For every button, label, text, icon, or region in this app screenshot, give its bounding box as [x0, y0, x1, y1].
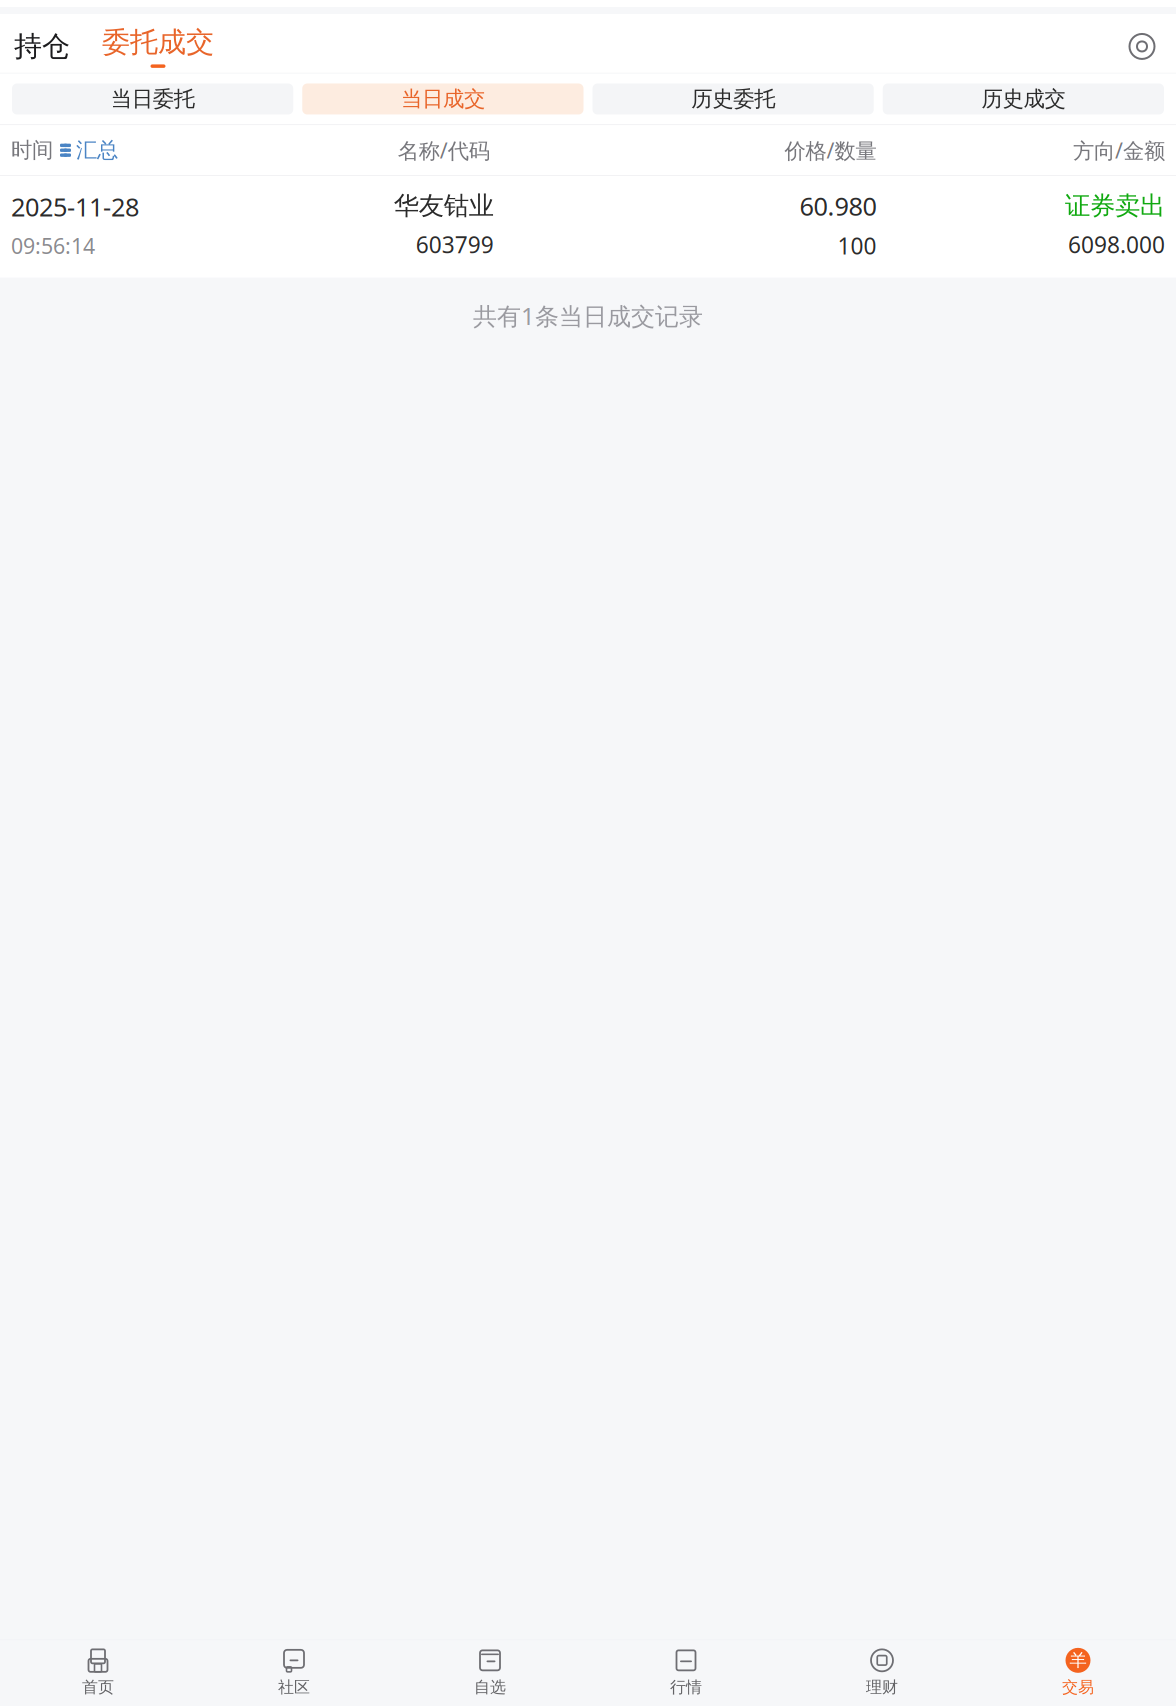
staticText: 社区 — [278, 1677, 310, 1697]
button[interactable]: 行情 — [588, 1640, 784, 1706]
button[interactable]: 当日成交 — [302, 83, 583, 114]
staticText: 名称/代码 — [398, 136, 490, 164]
staticText: 603799 — [416, 229, 494, 259]
button[interactable]: 委托成交 — [98, 25, 218, 68]
staticText: 60.980 — [799, 189, 876, 223]
staticText: 价格/数量 — [784, 136, 876, 164]
staticText: 自选 — [474, 1677, 506, 1697]
staticText: 方向/金额 — [1073, 136, 1165, 164]
staticText: 理财 — [866, 1677, 898, 1697]
button[interactable]: 首页 — [0, 1640, 196, 1706]
button[interactable]: 汇总 — [57, 137, 118, 163]
staticText: 共有1条当日成交记录 — [473, 300, 703, 332]
staticText: 汇总 — [76, 137, 118, 163]
staticText: 行情 — [670, 1677, 702, 1697]
staticText: 100 — [837, 231, 876, 261]
staticText: 当日成交 — [401, 86, 485, 112]
staticText: 09:56:14 — [11, 231, 95, 260]
staticText: 6098.000 — [1068, 229, 1165, 259]
staticText: 历史委托 — [691, 86, 775, 112]
button[interactable]: 社区 — [196, 1640, 392, 1706]
staticText: 华友钴业 — [394, 190, 494, 221]
button[interactable]: 2025-11-28 — [0, 176, 1176, 278]
button[interactable]: 历史委托 — [592, 83, 874, 114]
staticText: 证券卖出 — [1065, 190, 1165, 221]
staticText: 2025-11-28 — [11, 190, 139, 223]
button[interactable]: 持仓 — [10, 29, 74, 64]
button[interactable]: 历史成交 — [883, 83, 1164, 114]
staticText: 首页 — [82, 1677, 114, 1697]
staticText: 历史成交 — [981, 86, 1065, 112]
button[interactable]: 理财 — [784, 1640, 980, 1706]
button[interactable]: 羊 — [980, 1640, 1176, 1706]
staticText: 持仓 — [14, 29, 70, 64]
button[interactable]: 自选 — [392, 1640, 588, 1706]
staticText: 当日委托 — [111, 86, 195, 112]
staticText: 交易 — [1062, 1677, 1094, 1697]
button[interactable]: 当日委托 — [12, 83, 293, 114]
staticText: 羊 — [1069, 1650, 1086, 1671]
staticText: 时间 — [11, 137, 53, 163]
button[interactable]: 设置 — [1124, 32, 1160, 60]
staticText: 委托成交 — [102, 25, 214, 59]
